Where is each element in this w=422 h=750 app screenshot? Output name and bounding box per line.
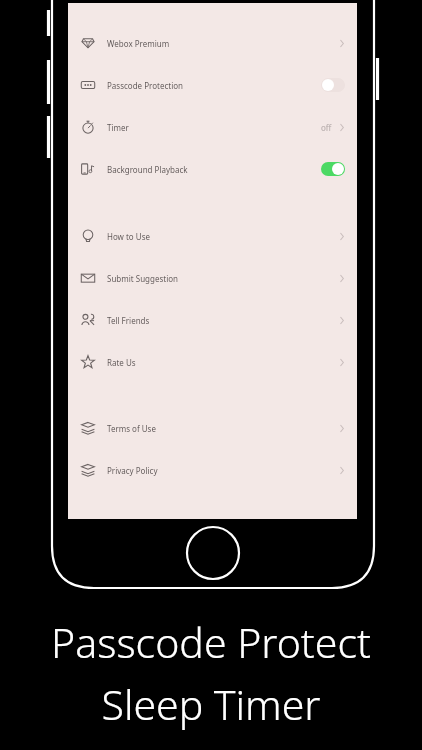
staticText: Sleep Timer bbox=[101, 676, 321, 732]
staticText: Submit Suggestion bbox=[107, 273, 179, 284]
button[interactable]: Privacy Policy bbox=[68, 456, 357, 484]
staticText: Rate Us bbox=[107, 357, 136, 368]
staticText: Background Playback bbox=[107, 164, 188, 175]
staticText: Privacy Policy bbox=[107, 465, 158, 476]
staticText: Terms of Use bbox=[107, 423, 156, 434]
button[interactable]: Background Playback bbox=[68, 155, 357, 183]
staticText: off bbox=[321, 122, 332, 133]
button[interactable]: Timer bbox=[68, 113, 357, 141]
staticText: Webox Premium bbox=[107, 38, 170, 49]
button[interactable]: Submit Suggestion bbox=[68, 264, 357, 292]
button[interactable]: How to Use bbox=[68, 222, 357, 250]
staticText: Timer bbox=[107, 122, 129, 133]
button[interactable]: Webox Premium bbox=[68, 29, 357, 57]
staticText: Passcode Protection bbox=[107, 80, 183, 91]
button[interactable]: Rate Us bbox=[68, 348, 357, 376]
button[interactable]: Toggle off bbox=[321, 78, 345, 92]
staticText: Passcode Protect bbox=[51, 614, 371, 670]
staticText: How to Use bbox=[107, 231, 150, 242]
button[interactable]: Passcode Protection bbox=[68, 71, 357, 99]
button[interactable]: Terms of Use bbox=[68, 414, 357, 442]
button[interactable]: Tell Friends bbox=[68, 306, 357, 334]
button[interactable]: Toggle on bbox=[321, 162, 345, 176]
staticText: Tell Friends bbox=[107, 315, 150, 326]
